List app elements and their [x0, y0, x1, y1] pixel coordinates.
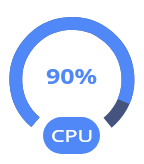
button[interactable]: CPU: [43, 117, 100, 154]
other: CPU usage 90 percent: [0, 0, 144, 164]
staticText: CPU: [51, 124, 93, 147]
staticText: 90%: [46, 62, 97, 91]
